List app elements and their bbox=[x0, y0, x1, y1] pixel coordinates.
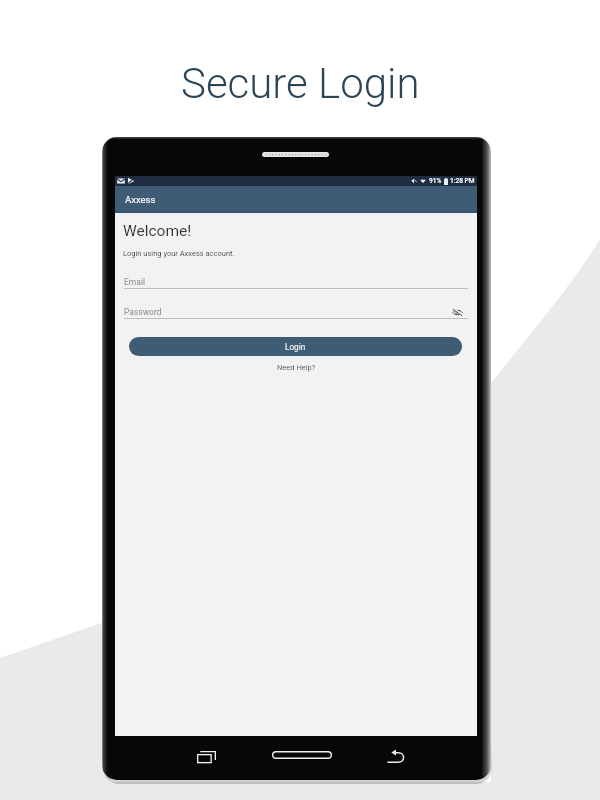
staticText: Need Help? bbox=[277, 363, 316, 372]
staticText: 91% bbox=[429, 177, 442, 185]
staticText: Welcome! bbox=[123, 222, 192, 240]
button[interactable]: Email bbox=[124, 277, 468, 289]
other: Show password bbox=[452, 308, 463, 317]
staticText: Login bbox=[285, 342, 306, 352]
staticText: Secure Login bbox=[181, 59, 420, 108]
button[interactable]: Home bbox=[257, 740, 346, 770]
staticText: Axxess bbox=[125, 194, 156, 205]
staticText: Email bbox=[124, 277, 146, 287]
staticText: 1:28 PM bbox=[450, 177, 475, 185]
button[interactable]: Login bbox=[129, 337, 462, 356]
button[interactable]: Password bbox=[124, 307, 468, 319]
button[interactable]: Back bbox=[380, 742, 411, 772]
button[interactable]: Need Help? bbox=[275, 362, 318, 373]
staticText: Login using your Axxess account. bbox=[123, 249, 235, 258]
button[interactable]: Recents bbox=[191, 742, 222, 772]
staticText: Password bbox=[124, 307, 162, 317]
